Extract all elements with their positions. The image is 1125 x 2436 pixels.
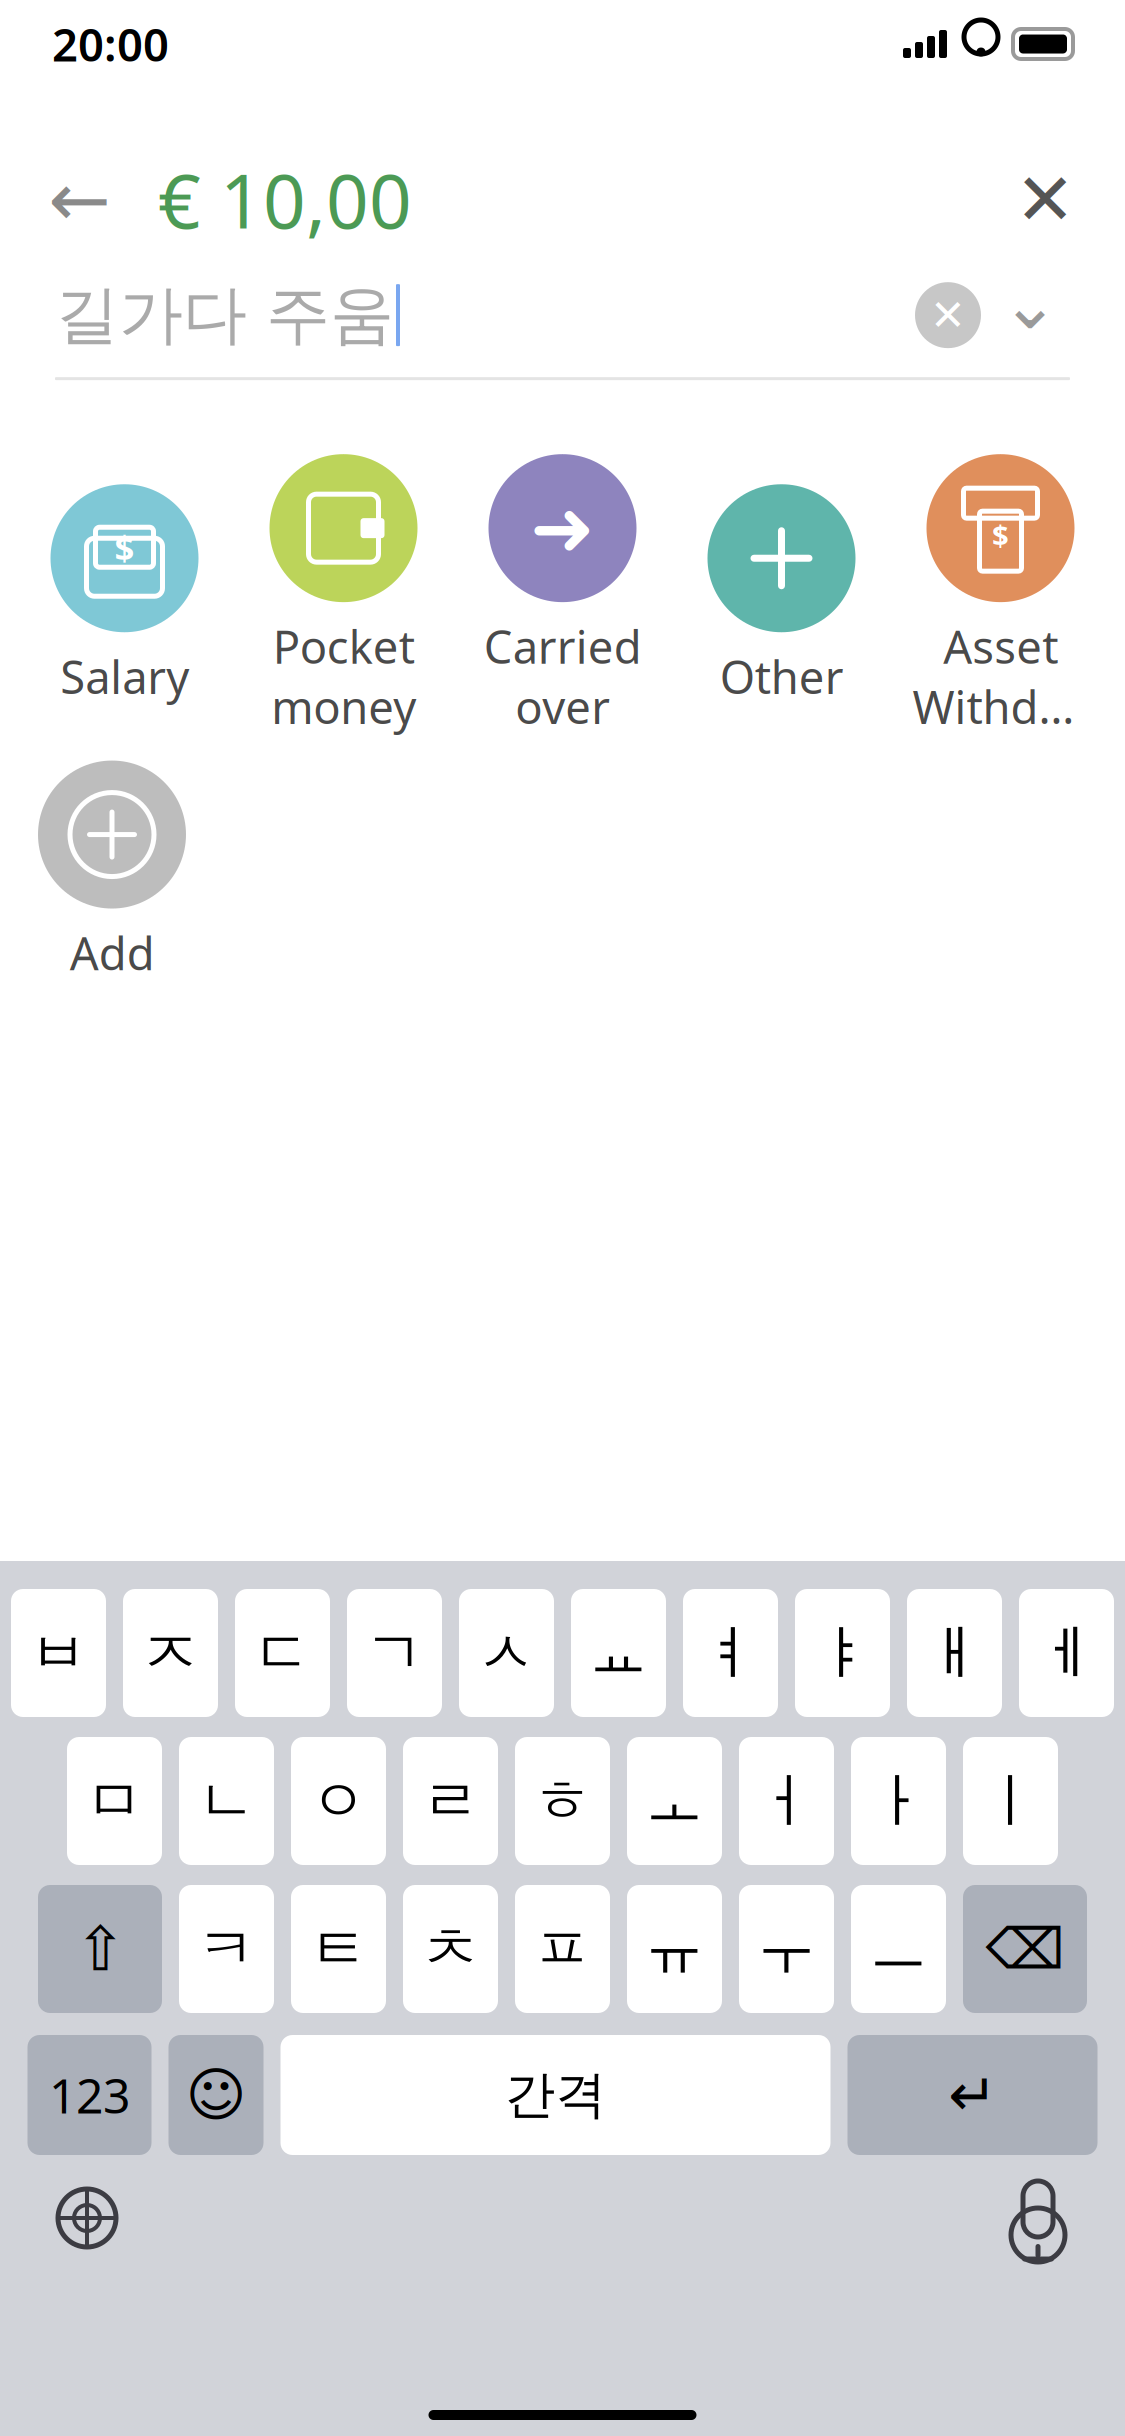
staticText: ㅇ: [309, 1765, 368, 1837]
button[interactable]: ㅜ: [739, 1885, 834, 2013]
staticText: ㅓ: [757, 1765, 816, 1837]
button[interactable]: ㄱ: [347, 1589, 442, 1717]
button[interactable]: ㅠ: [627, 1885, 722, 2013]
button[interactable]: 간격: [280, 2035, 830, 2155]
button[interactable]: Next keyboard: [42, 2173, 132, 2263]
button[interactable]: Show more: [990, 273, 1070, 357]
staticText: ㅛ: [589, 1617, 648, 1689]
button[interactable]: Close: [999, 154, 1091, 246]
button[interactable]: ㅣ: [963, 1737, 1058, 1865]
button[interactable]: ㅑ: [795, 1589, 890, 1717]
button[interactable]: ⇧: [38, 1885, 162, 2013]
button[interactable]: ㅋ: [179, 1885, 274, 2013]
button[interactable]: ㅇ: [291, 1737, 386, 1865]
staticText: Other: [719, 646, 843, 706]
button[interactable]: 123: [27, 2035, 151, 2155]
button[interactable]: ㅅ: [459, 1589, 554, 1717]
button[interactable]: ㅏ: [851, 1737, 946, 1865]
staticText: ㅡ: [869, 1913, 928, 1985]
button[interactable]: Other: [679, 484, 883, 706]
button[interactable]: ㅓ: [739, 1737, 834, 1865]
staticText: ㅌ: [309, 1913, 368, 1985]
staticText: Carried over: [483, 616, 641, 737]
staticText: ㄴ: [197, 1765, 256, 1837]
staticText: ✕: [1015, 159, 1075, 240]
staticText: Asset Withdrawal: [912, 616, 1088, 737]
button[interactable]: Clear text: [906, 273, 990, 357]
staticText: 20:00: [52, 14, 169, 74]
staticText: ➜: [530, 484, 595, 572]
button[interactable]: ㄴ: [179, 1737, 274, 1865]
button[interactable]: ㄷ: [235, 1589, 330, 1717]
staticText: Add: [69, 923, 154, 983]
button[interactable]: Add: [10, 761, 214, 983]
staticText: $: [992, 516, 1009, 555]
staticText: ㅊ: [421, 1913, 480, 1985]
staticText: ㅎ: [533, 1765, 592, 1837]
staticText: ✕: [930, 291, 966, 339]
staticText: ㄹ: [421, 1765, 480, 1837]
staticText: ㅐ: [925, 1617, 984, 1689]
staticText: ㅑ: [813, 1617, 872, 1689]
button[interactable]: ⌫: [963, 1885, 1087, 2013]
button[interactable]: ➜: [460, 454, 664, 737]
button[interactable]: ㅛ: [571, 1589, 666, 1717]
button[interactable]: ㅐ: [907, 1589, 1002, 1717]
button[interactable]: ㅈ: [123, 1589, 218, 1717]
button[interactable]: ㅂ: [11, 1589, 106, 1717]
staticText: 123: [49, 2063, 130, 2127]
button[interactable]: ㅊ: [403, 1885, 498, 2013]
staticText: ㅂ: [29, 1617, 88, 1689]
button[interactable]: Back: [34, 154, 126, 246]
staticText: ↵: [948, 2062, 997, 2128]
staticText: ⇧: [74, 1914, 125, 1984]
staticText: ㅕ: [701, 1617, 760, 1689]
button[interactable]: ㅁ: [67, 1737, 162, 1865]
staticText: ㅋ: [197, 1913, 256, 1985]
staticText: ㅗ: [645, 1765, 704, 1837]
button[interactable]: ㅎ: [515, 1737, 610, 1865]
button[interactable]: ㅔ: [1019, 1589, 1114, 1717]
button[interactable]: $: [898, 454, 1102, 737]
staticText: ㅈ: [141, 1617, 200, 1689]
button[interactable]: ㄹ: [403, 1737, 498, 1865]
button[interactable]: Pocket money: [241, 454, 445, 737]
staticText: ㅍ: [533, 1913, 592, 1985]
button[interactable]: ↵: [847, 2035, 1097, 2155]
staticText: ㅏ: [869, 1765, 928, 1837]
button[interactable]: $: [22, 484, 226, 706]
staticText: Pocket money: [271, 616, 416, 737]
staticText: $: [114, 524, 134, 570]
staticText: ㅅ: [477, 1617, 536, 1689]
staticText: ⌫: [985, 1917, 1064, 1981]
staticText: ㄷ: [253, 1617, 312, 1689]
staticText: ㅠ: [645, 1913, 704, 1985]
staticText: ☺: [185, 2062, 246, 2128]
button[interactable]: Dictation: [993, 2173, 1083, 2263]
button[interactable]: ㅗ: [627, 1737, 722, 1865]
staticText: 간격: [504, 2064, 606, 2126]
staticText: ㅜ: [757, 1913, 816, 1985]
staticText: ㅔ: [1037, 1617, 1096, 1689]
staticText: Salary: [60, 646, 189, 706]
staticText: ㅣ: [981, 1765, 1040, 1837]
button[interactable]: ㅍ: [515, 1885, 610, 2013]
button[interactable]: ☺: [168, 2035, 263, 2155]
staticText: ㅁ: [85, 1765, 144, 1837]
button[interactable]: ㅡ: [851, 1885, 946, 2013]
staticText: 길가다 주움: [55, 276, 394, 354]
staticText: ⌄: [1001, 265, 1059, 343]
staticText: ←: [48, 157, 111, 242]
staticText: ㄱ: [365, 1617, 424, 1689]
button[interactable]: ㅕ: [683, 1589, 778, 1717]
button[interactable]: ㅌ: [291, 1885, 386, 2013]
staticText: € 10,00: [158, 150, 412, 249]
